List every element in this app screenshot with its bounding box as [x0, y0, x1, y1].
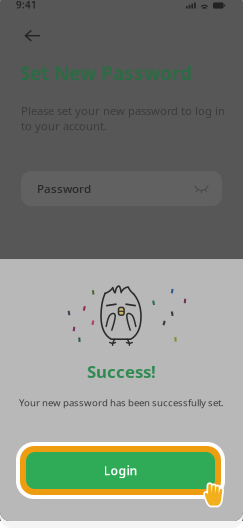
staticText: Please set your new password to log in t…	[21, 103, 225, 133]
button[interactable]: Login	[16, 442, 225, 499]
staticText: Set New Password	[20, 60, 192, 86]
staticText: Login	[103, 462, 137, 479]
staticText: Your new password has been successfully …	[19, 396, 224, 409]
staticText: Success!	[87, 360, 156, 383]
staticText: Password	[37, 181, 91, 196]
button[interactable]: Back	[18, 24, 47, 47]
staticText: 9:41	[16, 0, 37, 11]
